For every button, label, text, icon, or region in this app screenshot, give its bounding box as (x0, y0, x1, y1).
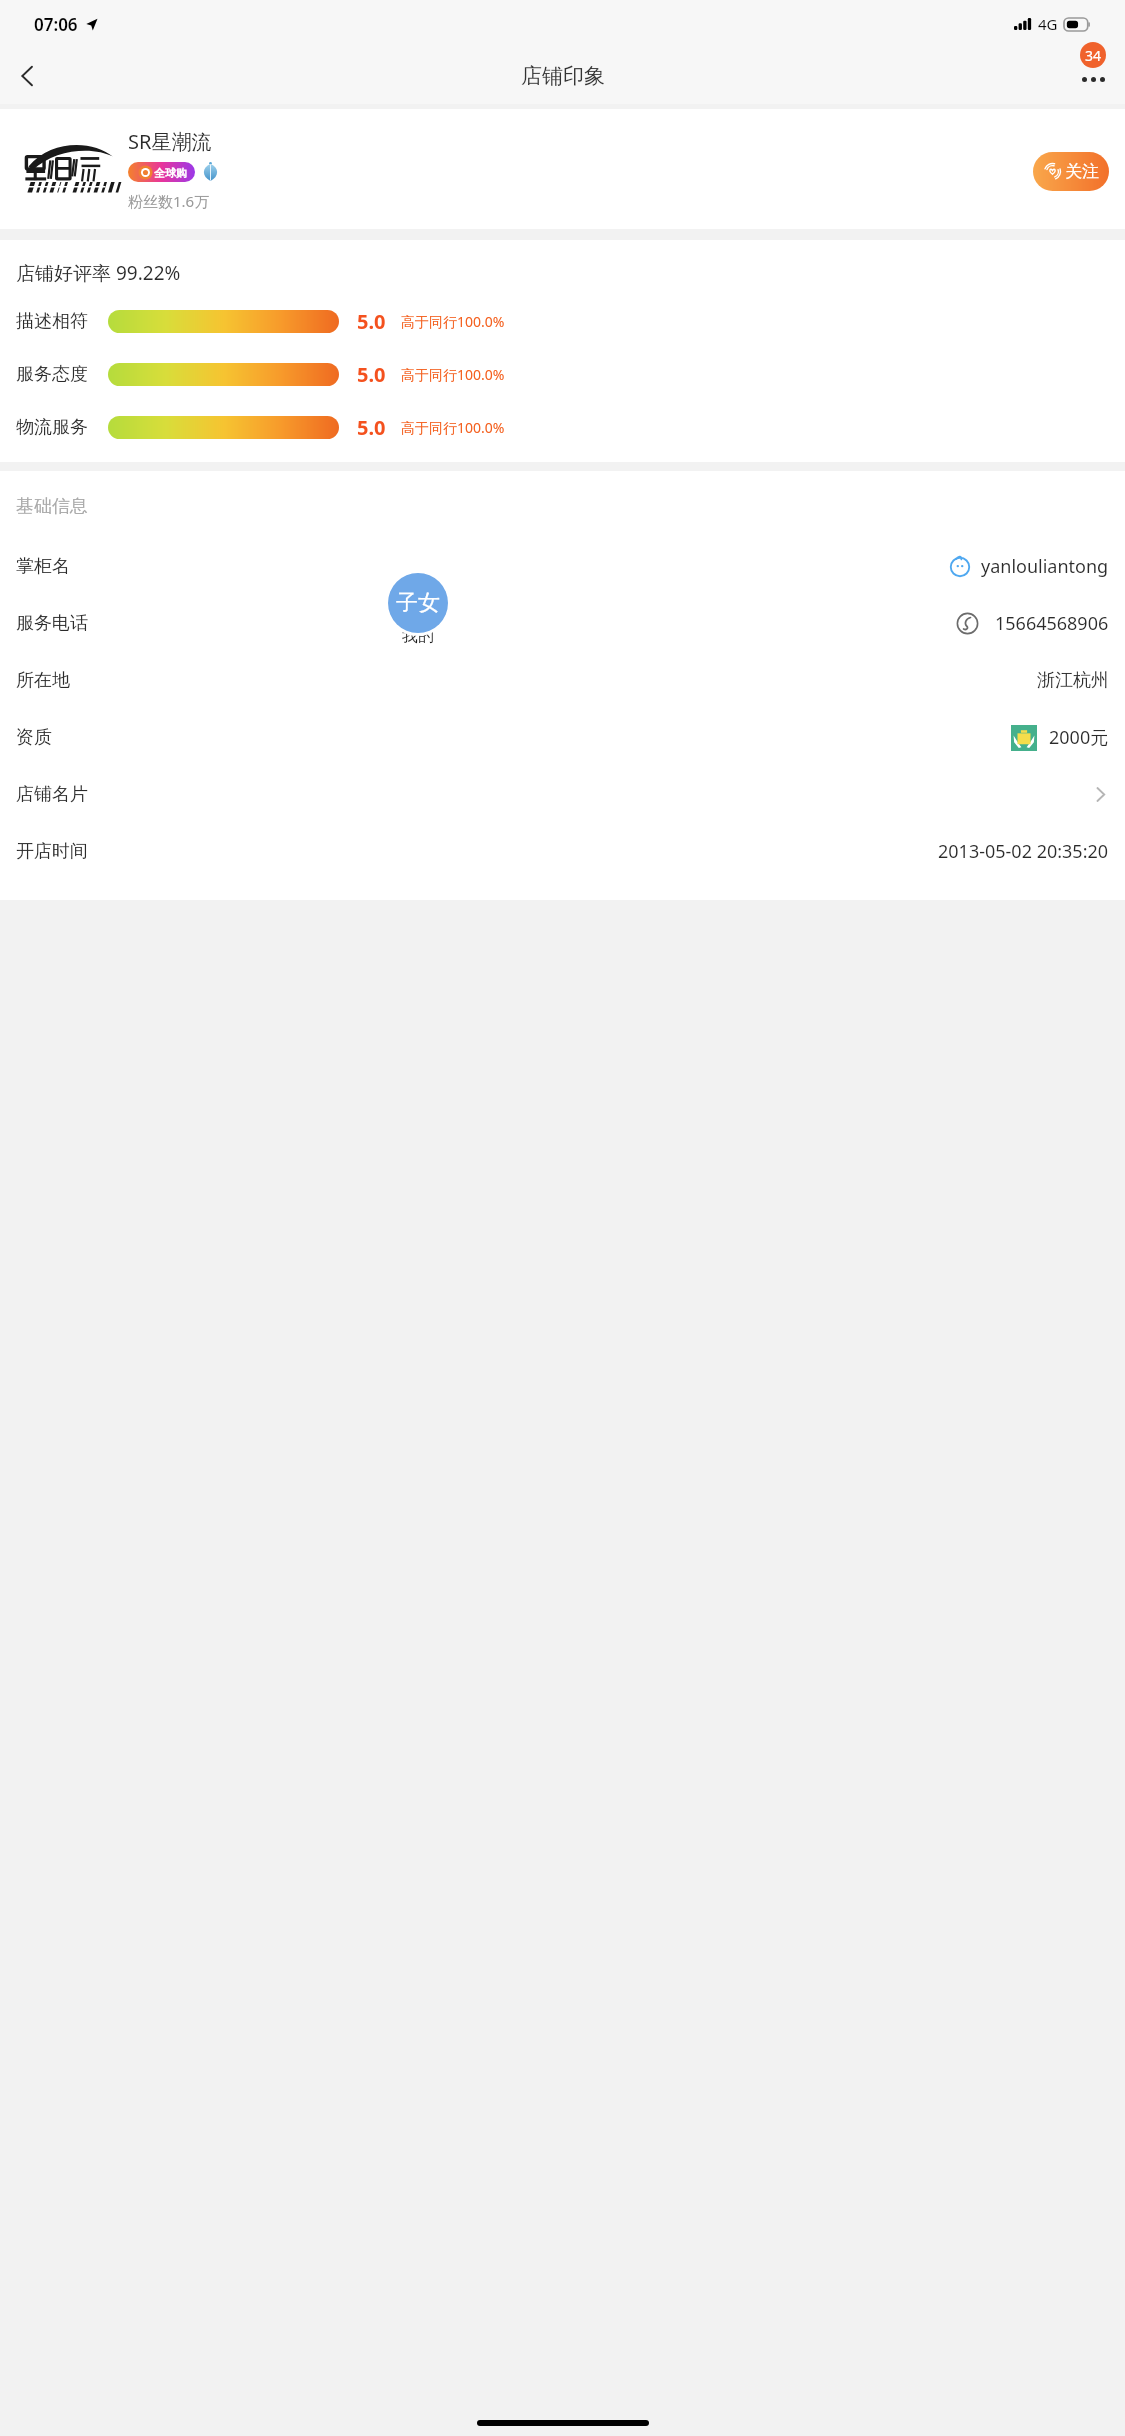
staticText: 服务电话 (16, 612, 88, 635)
staticText: 07:06 (34, 13, 78, 36)
staticText: 店铺好评率 99.22% (16, 260, 181, 286)
staticText: 服务态度 (16, 363, 88, 386)
staticText: 描述相符 (16, 310, 88, 333)
staticText: 高于同行100.0% (401, 312, 505, 331)
staticText: 所在地 (16, 669, 70, 692)
staticText: 5.0 (357, 308, 386, 334)
staticText: 店铺印象 (521, 63, 605, 89)
staticText: SR星潮流 (128, 128, 212, 155)
button[interactable]: More options (1061, 48, 1125, 104)
staticText: 子女 (396, 589, 440, 617)
staticText: 全球购 (154, 166, 187, 180)
button[interactable]: 关注 (1033, 152, 1109, 191)
staticText: 基础信息 (16, 495, 88, 518)
staticText: 我的 (402, 626, 434, 646)
staticText: 掌柜名 (16, 555, 70, 578)
staticText: 高于同行100.0% (401, 418, 505, 437)
staticText: yanlouliantong (981, 554, 1109, 579)
staticText: 店铺名片 (16, 783, 88, 806)
button[interactable]: 店铺名片 (0, 766, 1125, 823)
staticText: 34 (1085, 46, 1102, 65)
staticText: 物流服务 (16, 416, 88, 439)
staticText: 资质 (16, 726, 52, 749)
staticText: 2000元 (1049, 725, 1109, 750)
staticText: 15664568906 (995, 611, 1109, 636)
staticText: 粉丝数1.6万 (128, 191, 210, 211)
staticText: 4G (1038, 14, 1058, 34)
staticText: 浙江杭州 (1037, 669, 1109, 692)
staticText: 高于同行100.0% (401, 365, 505, 384)
staticText: 5.0 (357, 414, 386, 440)
button[interactable]: 子女 (388, 573, 448, 633)
staticText: 2013-05-02 20:35:20 (938, 839, 1109, 864)
staticText: 开店时间 (16, 840, 88, 863)
button[interactable]: Back (0, 48, 56, 104)
staticText: 关注 (1065, 161, 1099, 182)
staticText: 5.0 (357, 361, 386, 387)
